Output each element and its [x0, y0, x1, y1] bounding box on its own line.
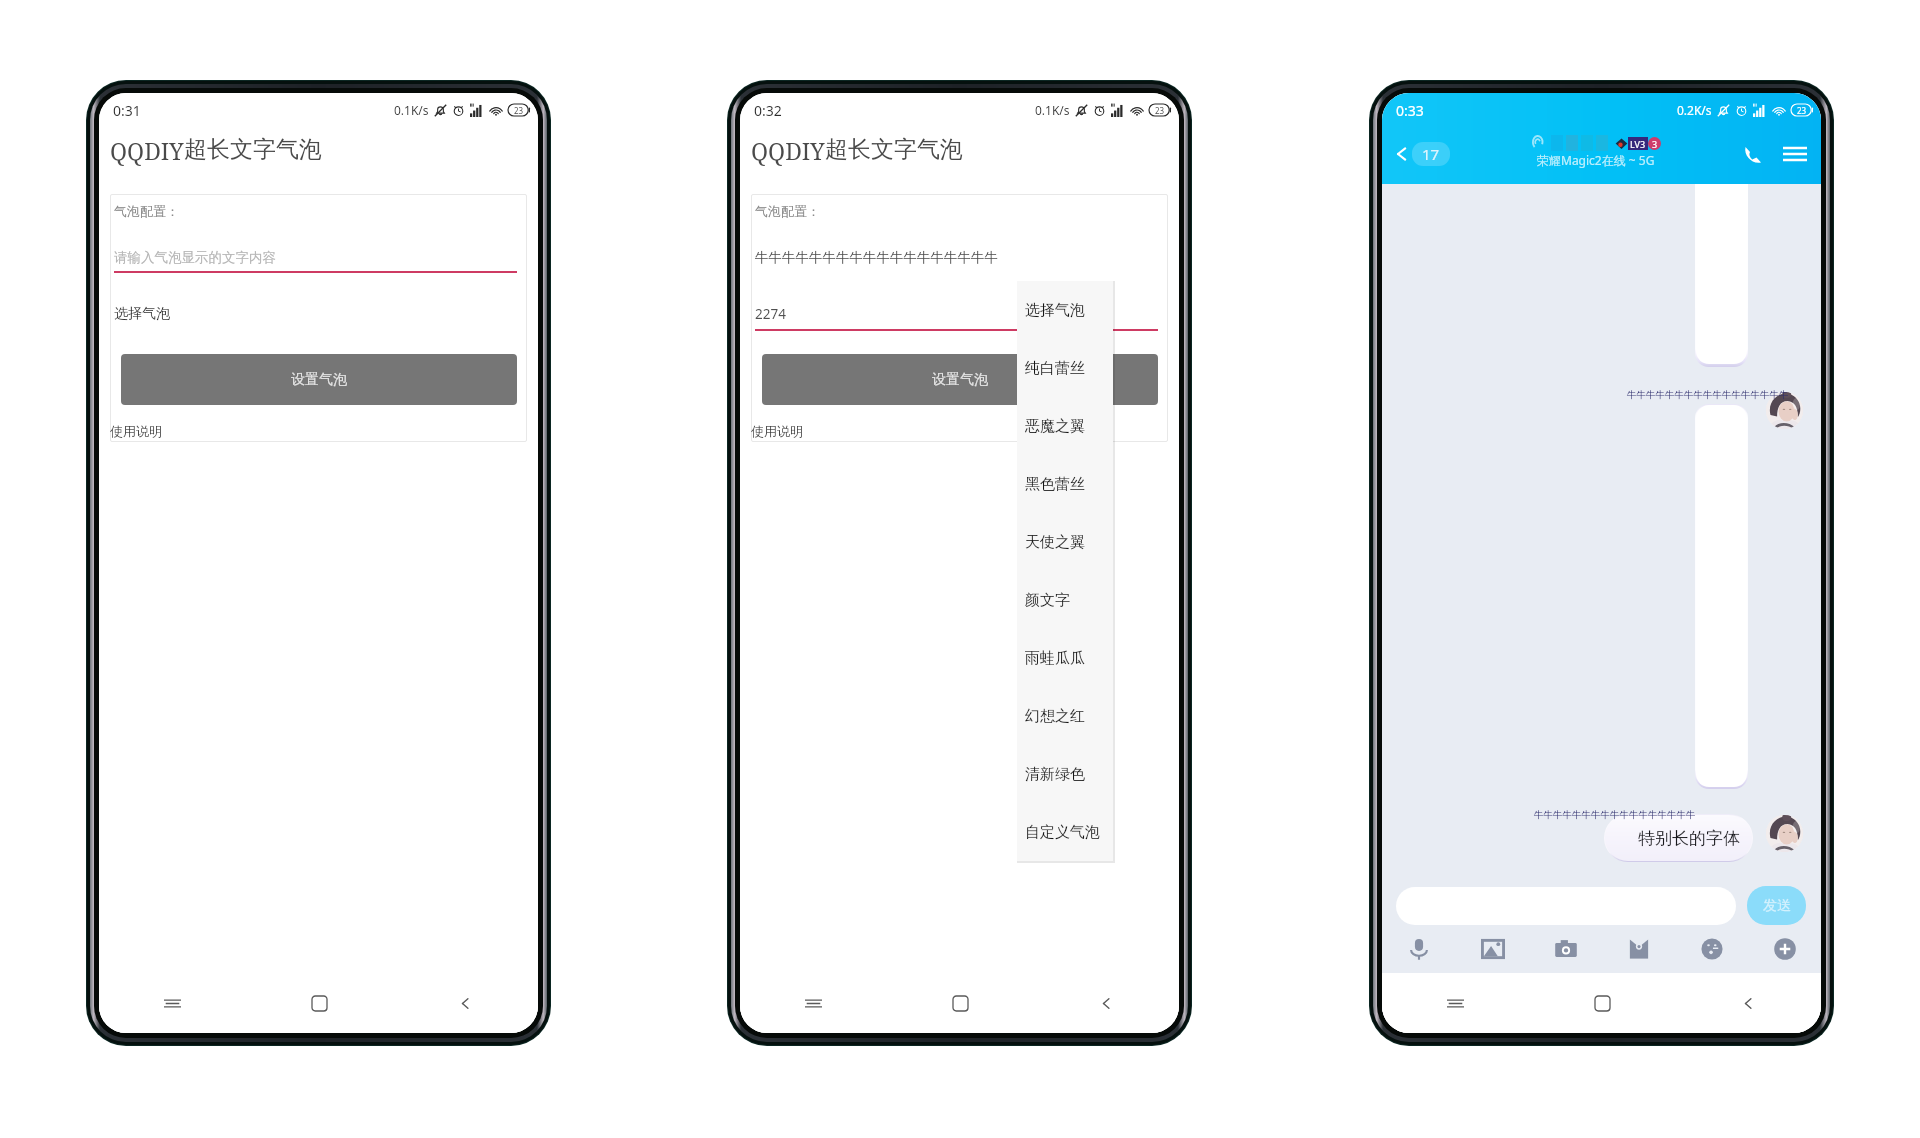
staticText: 设置气泡 [932, 371, 988, 389]
staticText: 荣耀Magic2在线 ~ 5G [1537, 152, 1655, 168]
button[interactable]: 使用说明 [110, 423, 162, 439]
button[interactable]: 清新绿色 [1017, 745, 1113, 803]
staticText: 颜文字 [1025, 591, 1070, 610]
button[interactable]: 黑色蕾丝 [1017, 455, 1113, 513]
button[interactable]: Recent apps [1382, 973, 1529, 1033]
button[interactable]: 雨蛙瓜瓜 [1017, 629, 1113, 687]
staticText: LV3 [1630, 138, 1646, 150]
button[interactable]: More [1748, 925, 1821, 973]
staticText: 自定义气泡 [1025, 823, 1100, 842]
staticText: 选择气泡 [1025, 301, 1085, 320]
button[interactable]: Recent apps [99, 973, 246, 1033]
button[interactable]: Back [392, 973, 538, 1033]
button[interactable]: Back [1675, 973, 1821, 1033]
button[interactable]: Voice [1382, 925, 1456, 973]
button[interactable]: Back [1033, 973, 1179, 1033]
button[interactable]: Home [887, 973, 1033, 1033]
staticText: 特别长的字体 [1638, 828, 1740, 849]
button[interactable]: 恶魔之翼 [1017, 397, 1113, 455]
button[interactable]: 选择气泡 [1017, 281, 1113, 339]
staticText: 3 [1652, 138, 1658, 150]
staticText: 0:32 [754, 101, 782, 120]
staticText: 23 [1155, 105, 1165, 116]
staticText: 黑色蕾丝 [1025, 475, 1085, 494]
staticText: 清新绿色 [1025, 765, 1085, 784]
button[interactable]: 使用说明 [751, 423, 803, 439]
button[interactable]: Camera [1529, 925, 1602, 973]
button[interactable]: Back [1392, 142, 1450, 166]
button[interactable]: 设置气泡 [762, 354, 1158, 405]
staticText: 发送 [1763, 897, 1791, 915]
staticText: 纯白蕾丝 [1025, 359, 1085, 378]
button[interactable]: 发送 [1747, 886, 1806, 925]
staticText: 牛牛牛牛牛牛牛牛牛牛牛牛牛牛牛牛牛牛 [755, 249, 998, 266]
button[interactable]: Gift [1602, 925, 1675, 973]
staticText: 恶魔之翼 [1025, 417, 1085, 436]
staticText: 幻想之红 [1025, 707, 1085, 726]
button[interactable]: 颜文字 [1017, 571, 1113, 629]
staticText: 23 [514, 105, 524, 116]
button[interactable]: Call [1741, 142, 1766, 167]
button[interactable]: 幻想之红 [1017, 687, 1113, 745]
button[interactable]: Emoji [1675, 925, 1748, 973]
staticText: 选择气泡 [114, 305, 170, 323]
staticText: 0:31 [113, 101, 141, 120]
staticText: QQDIY [110, 135, 184, 166]
staticText: 雨蛙瓜瓜 [1025, 649, 1085, 668]
staticText: 气泡配置： [114, 203, 179, 219]
staticText: QQDIY [751, 135, 825, 166]
staticText: 23 [1797, 105, 1807, 116]
staticText: 17 [1422, 144, 1440, 164]
button[interactable]: Recent apps [740, 973, 887, 1033]
staticText: 设置气泡 [291, 371, 347, 389]
staticText: 超长文字气泡 [825, 135, 963, 164]
staticText: 牛牛牛牛牛牛牛牛牛牛牛牛牛牛牛牛牛 [1534, 809, 1696, 821]
staticText: 天使之翼 [1025, 533, 1085, 552]
button[interactable]: Home [1529, 973, 1675, 1033]
staticText: 0:33 [1396, 101, 1424, 120]
staticText: 超长文字气泡 [184, 135, 322, 164]
button[interactable]: Menu [1783, 142, 1807, 166]
staticText: 0.1K/s [394, 102, 429, 118]
staticText: 牛牛牛牛牛牛牛牛牛牛牛牛牛牛牛牛牛 [1627, 389, 1789, 401]
button[interactable]: 设置气泡 [121, 354, 517, 405]
button[interactable]: 天使之翼 [1017, 513, 1113, 571]
button[interactable]: 纯白蕾丝 [1017, 339, 1113, 397]
button[interactable] [1396, 887, 1736, 925]
button[interactable]: Photos [1456, 925, 1529, 973]
staticText: 0.1K/s [1035, 102, 1070, 118]
button[interactable]: 自定义气泡 [1017, 803, 1113, 861]
staticText: 2274 [755, 305, 786, 323]
staticText: 请输入气泡显示的文字内容 [114, 249, 276, 266]
staticText: 气泡配置： [755, 203, 820, 219]
button[interactable]: 特别长的字体 [1605, 815, 1752, 861]
staticText: 0.2K/s [1677, 102, 1712, 118]
button[interactable]: Home [246, 973, 392, 1033]
